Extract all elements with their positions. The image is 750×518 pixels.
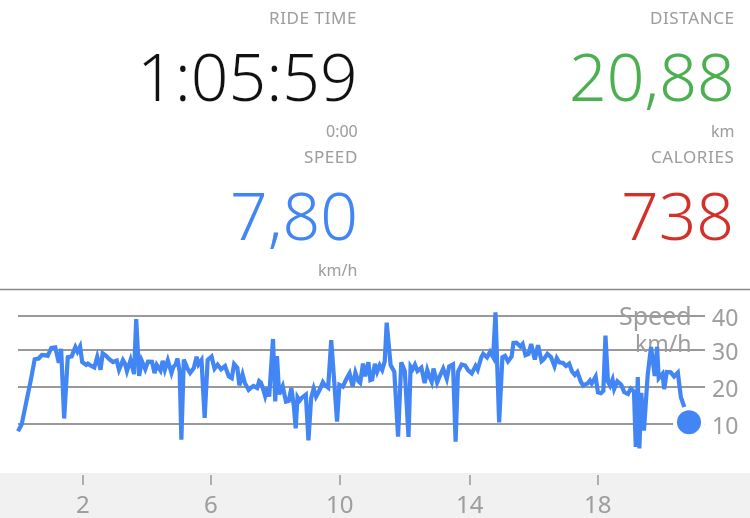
staticText: SPEED — [304, 145, 358, 168]
staticText: 738 — [621, 169, 735, 259]
staticText: RIDE TIME — [269, 6, 358, 29]
staticText: 1:05:59 — [137, 30, 358, 120]
staticText: km/h — [318, 259, 358, 281]
staticText: CALORIES — [651, 145, 735, 168]
button[interactable]: DISTANCE — [569, 6, 735, 142]
staticText: 7,80 — [230, 169, 358, 259]
button[interactable]: CALORIES — [621, 145, 735, 281]
button[interactable]: SPEED — [230, 145, 358, 281]
staticText: km — [711, 120, 735, 142]
staticText: 20,88 — [569, 30, 735, 120]
staticText: 0:00 — [326, 120, 358, 142]
button[interactable]: RIDE TIME — [137, 6, 358, 142]
staticText: DISTANCE — [650, 6, 735, 29]
button[interactable]: Speed chart — [0, 289, 750, 518]
